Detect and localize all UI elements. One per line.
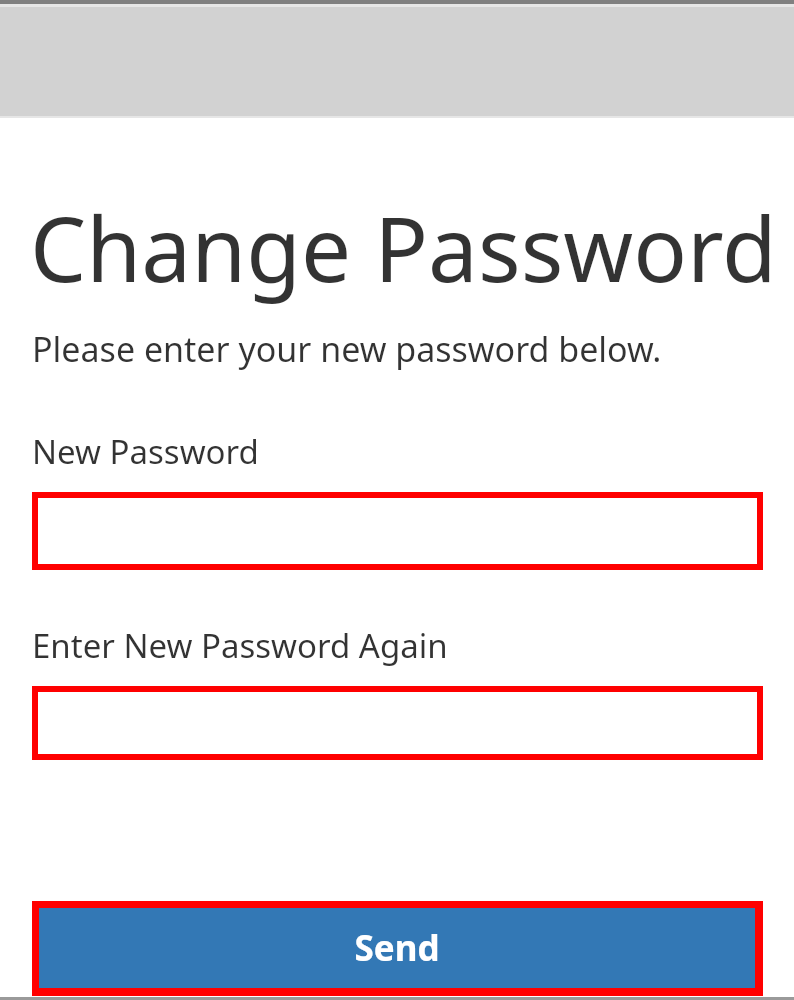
staticText: Please enter your new password below. bbox=[32, 326, 662, 372]
staticText: Enter New Password Again bbox=[32, 623, 448, 668]
button[interactable] bbox=[32, 492, 763, 570]
staticText: Send bbox=[354, 924, 440, 972]
button[interactable] bbox=[32, 686, 763, 760]
staticText: New Password bbox=[32, 429, 259, 474]
button[interactable]: Send bbox=[32, 901, 763, 996]
staticText: Change Password bbox=[30, 187, 777, 308]
